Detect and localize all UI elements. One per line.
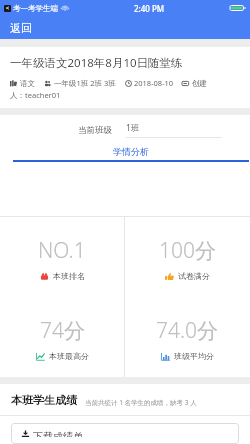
staticText: NO.1: [38, 236, 86, 265]
staticText: 一年级语文2018年8月10日随堂练: [10, 55, 183, 71]
staticText: 本班最高分: [49, 351, 89, 361]
staticText: 2:40 PM: [134, 3, 165, 14]
staticText: 74分: [40, 316, 85, 345]
button[interactable]: 74分: [0, 299, 124, 377]
staticText: 返回: [10, 21, 32, 35]
button[interactable]: 返回: [6, 19, 36, 37]
button[interactable]: NO.1: [0, 217, 124, 299]
staticText: 1班: [126, 122, 140, 134]
staticText: <: [6, 5, 9, 12]
staticText: 一年级1班 2班 3班: [54, 78, 116, 88]
staticText: 2018-08-10: [134, 78, 174, 88]
staticText: 当前共统计 1 名学生的成绩，缺考 3 人: [85, 398, 197, 407]
button[interactable]: 74.0分: [125, 299, 250, 377]
staticText: 考一考学生端: [13, 4, 58, 13]
staticText: 本班排名: [53, 271, 85, 281]
staticText: 74.0分: [156, 316, 219, 345]
button[interactable]: 100分: [125, 217, 250, 299]
staticText: 试卷满分: [178, 271, 210, 281]
button[interactable]: 下载成绩单: [11, 423, 239, 444]
staticText: 学情分析: [113, 146, 149, 157]
staticText: 当前班级: [78, 125, 112, 136]
staticText: 语文: [20, 79, 35, 88]
button[interactable]: 1班: [126, 122, 222, 138]
staticText: 人：teacher01: [10, 90, 61, 100]
staticText: 创建: [192, 79, 207, 88]
staticText: 下载成绩单: [33, 430, 83, 437]
button[interactable]: 学情分析: [12, 146, 250, 162]
staticText: 班级平均分: [174, 351, 214, 361]
staticText: 本班学生成绩: [11, 393, 77, 407]
staticText: 100分: [159, 236, 216, 265]
